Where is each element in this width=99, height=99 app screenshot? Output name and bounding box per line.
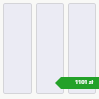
button[interactable]: Column 1 xyxy=(3,3,32,94)
button[interactable]: Column 3 xyxy=(68,3,96,94)
button[interactable]: Column 2 xyxy=(36,3,64,94)
button[interactable]: Price 1101 zł xyxy=(55,77,99,89)
staticText: 1101 zł xyxy=(75,78,93,86)
